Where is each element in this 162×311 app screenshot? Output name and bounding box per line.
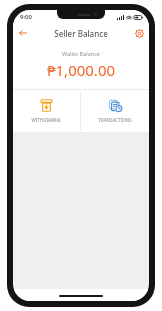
staticText: 9:00 xyxy=(20,13,32,21)
button[interactable]: Withdrawal xyxy=(13,90,80,132)
staticText: TRANSACTIONS xyxy=(98,117,132,123)
staticText: ₱1,000.00 xyxy=(13,60,149,80)
button[interactable]: Settings xyxy=(132,26,146,40)
button[interactable]: Back xyxy=(16,26,30,40)
button[interactable]: Transactions xyxy=(81,90,149,132)
staticText: Seller Balance xyxy=(54,28,108,39)
staticText: Wallet Balance xyxy=(13,50,149,57)
staticText: WITHDRAWAL xyxy=(31,117,62,123)
